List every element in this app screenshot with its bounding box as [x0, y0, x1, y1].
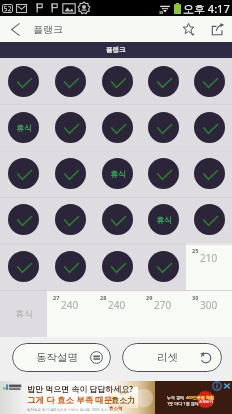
staticText: 휴식: [15, 308, 33, 319]
button[interactable]: [94, 104, 140, 150]
staticText: 240: [61, 298, 79, 312]
button[interactable]: [0, 243, 47, 290]
button[interactable]: [186, 58, 232, 104]
staticText: 240: [108, 298, 126, 312]
staticText: 300: [200, 298, 218, 312]
staticText: 1분 마다 1병 판매: [167, 401, 200, 406]
button[interactable]: 27: [47, 290, 94, 337]
staticText: 27: [53, 294, 60, 301]
button[interactable]: Back: [0, 16, 32, 42]
button[interactable]: 25: [186, 243, 232, 290]
staticText: 밥만 먹으면 속이 답답하세요?: [27, 383, 134, 394]
button[interactable]: [0, 150, 47, 196]
button[interactable]: [47, 150, 94, 196]
staticText: 효소: [120, 391, 127, 395]
button[interactable]: [140, 104, 186, 150]
staticText: 동작설명: [36, 351, 78, 364]
button[interactable]: [186, 104, 232, 150]
button[interactable]: 28: [94, 290, 140, 337]
staticText: 효소力: [111, 395, 135, 405]
button[interactable]: 휴식: [140, 196, 186, 243]
staticText: 28: [100, 294, 107, 301]
button[interactable]: Share: [202, 16, 232, 42]
staticText: 휴식: [110, 169, 126, 179]
button[interactable]: [0, 196, 47, 243]
button[interactable]: [94, 196, 140, 243]
button[interactable]: Favorite: [174, 16, 202, 42]
staticText: 특허받은 장기 캠페인으로 서비스 절대품 100% 효소: [27, 407, 108, 412]
staticText: 25: [192, 247, 199, 254]
button[interactable]: [0, 58, 47, 104]
staticText: 그게 다 효소 부족 때문!: [27, 394, 115, 406]
button[interactable]: 휴식: [94, 150, 140, 196]
staticText: 플랭크: [106, 46, 126, 54]
button[interactable]: 리셋: [122, 343, 222, 372]
staticText: 신청하기: [199, 400, 213, 404]
staticText: 29: [146, 294, 153, 301]
button[interactable]: Advertisement: [0, 381, 232, 414]
button[interactable]: [47, 196, 94, 243]
button[interactable]: [94, 243, 140, 290]
button[interactable]: [94, 58, 140, 104]
button[interactable]: 30: [186, 290, 232, 337]
staticText: 무료 체험: [197, 395, 215, 400]
button[interactable]: 휴식: [0, 104, 47, 150]
button[interactable]: Close ad: [222, 381, 232, 391]
staticText: 30: [192, 294, 199, 301]
button[interactable]: [140, 150, 186, 196]
staticText: 리셋: [157, 351, 178, 364]
staticText: 경이적!: [200, 401, 214, 406]
staticText: 270: [154, 298, 172, 312]
staticText: 효소력: [109, 406, 123, 412]
staticText: 누적 판매: [167, 395, 186, 400]
staticText: 플랭크: [33, 23, 63, 36]
button[interactable]: 29: [140, 290, 186, 337]
button[interactable]: [186, 150, 232, 196]
staticText: 휴식: [16, 123, 32, 133]
button[interactable]: [47, 104, 94, 150]
staticText: 400만 병!: [186, 395, 204, 400]
button[interactable]: [186, 196, 232, 243]
button[interactable]: [140, 58, 186, 104]
button[interactable]: 휴식: [0, 290, 47, 337]
button[interactable]: [140, 243, 186, 290]
button[interactable]: [47, 58, 94, 104]
button[interactable]: [47, 243, 94, 290]
button[interactable]: Ad info: [212, 381, 222, 391]
staticText: 210: [200, 251, 218, 265]
button[interactable]: 동작설명: [12, 343, 111, 372]
staticText: 오후 4:17: [183, 1, 230, 16]
staticText: 휴식: [156, 215, 172, 225]
